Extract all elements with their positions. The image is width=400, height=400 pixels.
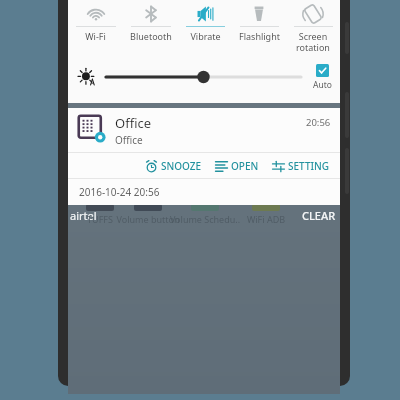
staticText: Office (115, 114, 152, 132)
staticText: Wi-Fi (85, 30, 106, 42)
button[interactable]: CLEAR (296, 205, 342, 226)
staticText: CLEAR (302, 208, 336, 223)
button[interactable]: Wi-Fi (68, 0, 123, 52)
staticText: 2016-10-24 20:56 (79, 185, 160, 199)
button[interactable]: SNOOZE (143, 156, 204, 176)
button[interactable]: Office (68, 108, 340, 152)
staticText: 20:56 (306, 116, 331, 129)
staticText: OPEN (231, 159, 259, 173)
staticText: Vibrate (190, 30, 221, 42)
staticText: WiFi ADB (228, 213, 304, 225)
button[interactable]: Vibrate (178, 0, 232, 52)
staticText: Volume button (110, 213, 186, 225)
button[interactable]: Screen rotation (286, 0, 340, 52)
staticText: airtel (70, 208, 97, 223)
staticText: Office (115, 133, 143, 147)
button[interactable]: Auto (311, 64, 334, 91)
button[interactable]: SETTING (270, 156, 332, 176)
staticText: Flashlight (239, 30, 280, 42)
button[interactable]: Bluetooth (123, 0, 178, 52)
staticText: SNOOZE (161, 159, 202, 173)
staticText: Volume Schedu.. (167, 213, 243, 225)
button[interactable]: Flashlight (232, 0, 286, 52)
button[interactable]: OPEN (213, 156, 261, 176)
staticText: Bluetooth (130, 30, 172, 42)
staticText: Auto (313, 79, 332, 91)
staticText: Screen rotation (296, 30, 330, 52)
staticText: SETTING (288, 159, 330, 173)
staticText: TUFFS (62, 213, 138, 225)
button[interactable]: Brightness (106, 65, 301, 89)
